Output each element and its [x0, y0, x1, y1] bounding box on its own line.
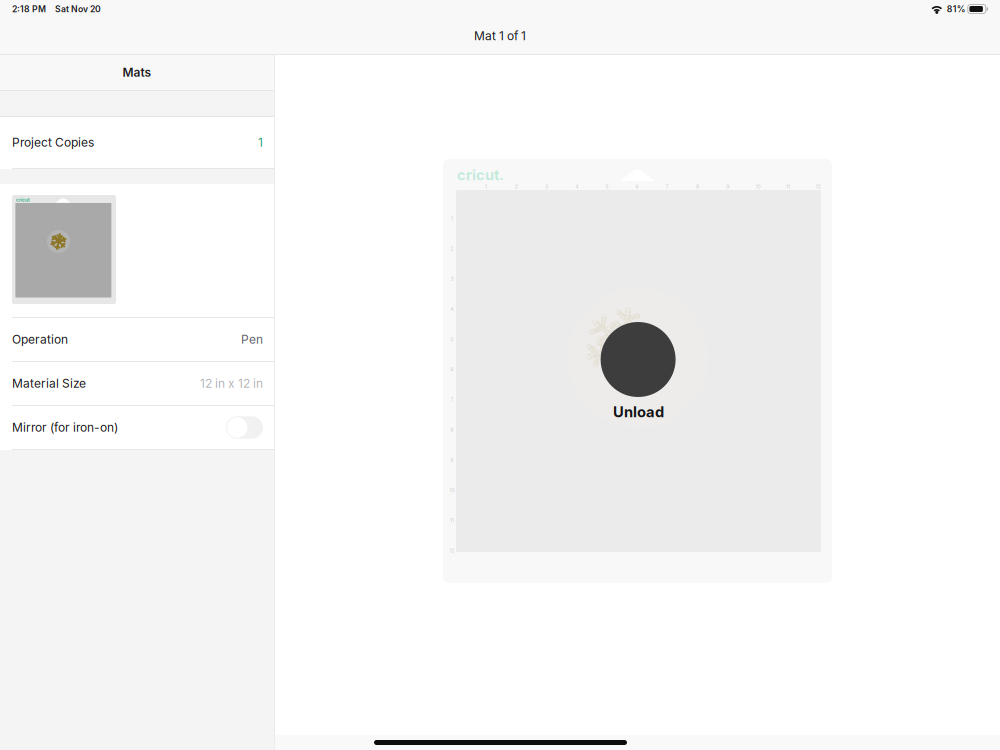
staticText: 6 [636, 183, 639, 190]
staticText: 9 [726, 183, 729, 190]
staticText: Mirror (for iron-on) [12, 420, 118, 435]
staticText: 1 [485, 183, 487, 190]
staticText: Mats [122, 65, 151, 80]
staticText: 2:18 PM [12, 4, 46, 14]
staticText: 10 [755, 183, 760, 190]
button[interactable]: Operation [0, 318, 274, 362]
staticText: 3 [450, 276, 453, 282]
staticText: 10 [449, 487, 454, 493]
staticText: cricut [16, 197, 30, 203]
button[interactable]: Material Size [0, 362, 274, 406]
staticText: 11 [786, 183, 790, 190]
button[interactable]: cricut [0, 184, 274, 318]
staticText: 2 [515, 183, 518, 190]
button[interactable]: Unload mat [601, 322, 676, 397]
staticText: 8 [696, 183, 699, 190]
staticText: cricut. [457, 166, 504, 184]
staticText: 12 [449, 548, 454, 554]
staticText: 1 [258, 135, 263, 150]
staticText: 4 [575, 183, 578, 190]
staticText: Project Copies [12, 135, 94, 150]
staticText: 6 [450, 366, 453, 372]
staticText: 5 [605, 183, 608, 190]
staticText: 5 [450, 336, 453, 342]
staticText: 8 [450, 427, 453, 433]
staticText: 3 [545, 183, 548, 190]
staticText: 11 [450, 517, 454, 523]
staticText: 1 [451, 215, 453, 221]
staticText: 81% [947, 4, 966, 14]
staticText: 9 [450, 457, 453, 463]
staticText: 7 [450, 397, 453, 403]
staticText: Unload [613, 403, 664, 421]
button[interactable]: Project Copies [0, 117, 274, 169]
staticText: Sat Nov 20 [55, 4, 101, 14]
staticText: Material Size [12, 376, 86, 391]
staticText: 4 [450, 306, 453, 312]
staticText: 2 [450, 246, 453, 252]
staticText: Pen [241, 332, 263, 347]
staticText: 7 [666, 183, 669, 190]
staticText: Mat 1 of 1 [474, 29, 526, 43]
staticText: 12 [816, 183, 821, 190]
button[interactable]: Mirror (for iron-on) [0, 406, 274, 450]
staticText: Operation [12, 332, 68, 347]
staticText: 12 in x 12 in [200, 376, 263, 391]
